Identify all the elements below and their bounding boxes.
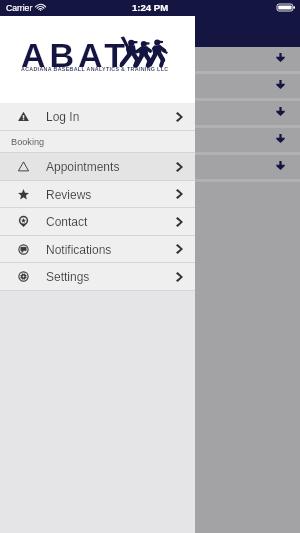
button[interactable]: Reviews <box>0 181 195 207</box>
button[interactable]: Log In <box>0 103 195 130</box>
staticText: Booking <box>11 137 45 147</box>
staticText: Appointments <box>46 160 120 173</box>
staticText: ACADIANA BASEBALL ANALYTICS & TRAINING L… <box>21 66 169 72</box>
staticText: Settings <box>46 270 90 283</box>
button[interactable]: Appointments <box>0 153 195 180</box>
staticText: ABAT <box>21 36 129 74</box>
button[interactable]: Expand item <box>0 74 300 98</box>
staticText: Reviews <box>46 188 92 201</box>
button[interactable]: Notifications <box>0 236 195 262</box>
button[interactable]: Expand item <box>0 155 300 179</box>
button[interactable]: Expand item <box>0 47 300 71</box>
button[interactable]: Contact <box>0 208 195 235</box>
staticText: 1:24 PM <box>132 2 169 13</box>
staticText: Notifications <box>46 243 112 256</box>
button[interactable]: Expand item <box>0 101 300 125</box>
button[interactable]: Settings <box>0 263 195 290</box>
staticText: Carrier <box>6 3 33 13</box>
staticText: Log In <box>46 110 80 123</box>
staticText: Contact <box>46 215 88 228</box>
button[interactable]: Expand item <box>0 128 300 152</box>
